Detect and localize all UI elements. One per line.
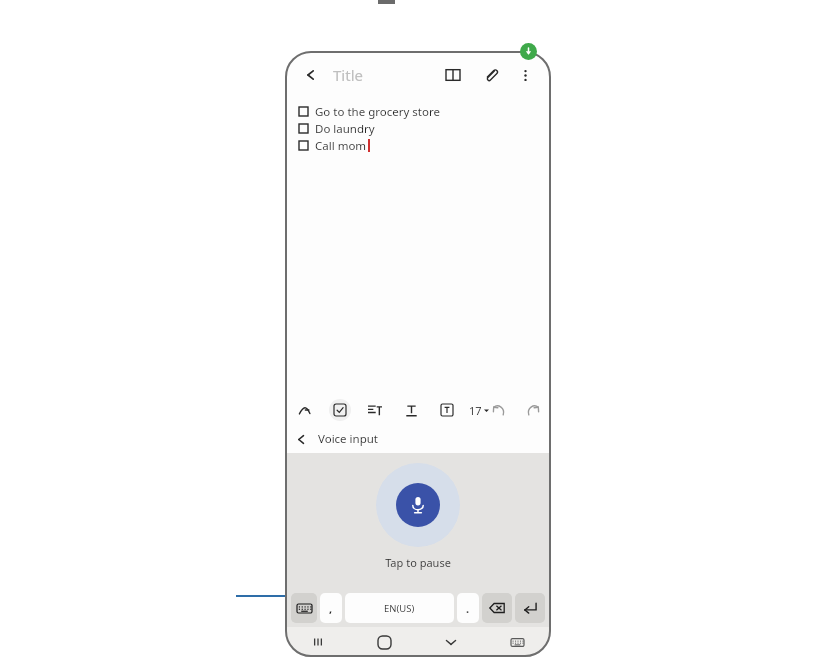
button[interactable]: Back [297,61,325,89]
button[interactable]: Call mom [299,137,551,154]
button[interactable]: Recents [285,627,351,657]
button[interactable]: Paragraph [365,400,385,420]
button[interactable]: Checklist [329,399,351,421]
button[interactable]: Voice input [297,425,539,453]
button[interactable]: 17 [469,403,489,418]
other: Download [520,43,537,60]
button[interactable]: Do laundry [299,120,551,137]
button[interactable]: Backspace [482,593,512,623]
button[interactable]: Text style [401,400,421,420]
staticText: Do laundry [315,121,375,137]
button[interactable]: Redo [525,400,541,420]
button[interactable]: Reading view [439,61,467,89]
staticText: , [329,601,333,616]
button[interactable]: Tap to pause [376,463,460,547]
staticText: EN(US) [384,602,415,615]
staticText: . [466,601,470,616]
staticText: Tap to pause [385,555,451,570]
button[interactable]: . [457,593,479,623]
staticText: Title [333,65,363,85]
staticText: Voice input [318,431,378,447]
button[interactable]: Hide keyboard [417,627,484,657]
button[interactable]: Enter [515,593,545,623]
button[interactable]: Attach [477,61,505,89]
button[interactable]: More options [511,61,539,89]
button[interactable]: Go to the grocery store [299,103,551,120]
button[interactable]: Text box [437,400,457,420]
button[interactable]: EN(US) [345,593,454,623]
staticText: 17 [469,403,482,418]
button[interactable]: Home [351,627,417,657]
button[interactable]: Switch keyboard [291,593,317,623]
button[interactable]: Pen [295,400,315,420]
button[interactable]: , [320,593,342,623]
button[interactable]: Undo [489,400,509,420]
staticText: Go to the grocery store [315,104,440,120]
staticText: Call mom [315,138,367,154]
button[interactable]: Keyboard [484,627,551,657]
